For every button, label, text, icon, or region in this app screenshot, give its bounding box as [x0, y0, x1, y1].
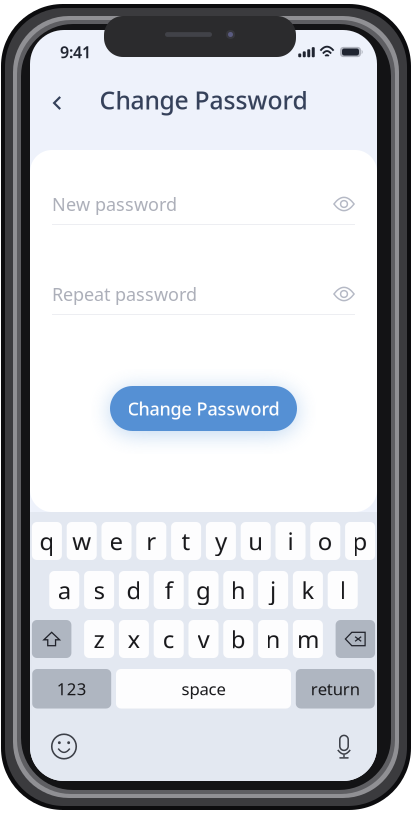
staticText: s: [94, 574, 105, 606]
button[interactable]: e: [101, 522, 131, 560]
button[interactable]: w: [67, 522, 97, 560]
button[interactable]: c: [154, 620, 184, 658]
button[interactable]: q: [32, 522, 62, 560]
staticText: i: [287, 525, 293, 557]
staticText: f: [165, 574, 173, 606]
button[interactable]: return: [296, 669, 375, 708]
button[interactable]: u: [241, 522, 271, 560]
staticText: m: [297, 623, 319, 655]
button[interactable]: v: [188, 620, 218, 658]
staticText: h: [231, 574, 246, 606]
staticText: u: [248, 525, 263, 557]
staticText: y: [215, 525, 227, 557]
button[interactable]: f: [154, 571, 184, 609]
button[interactable]: a: [49, 571, 79, 609]
staticText: b: [231, 623, 246, 655]
button[interactable]: y: [206, 522, 236, 560]
staticText: j: [270, 574, 276, 606]
button[interactable]: h: [223, 571, 253, 609]
button[interactable]: Dictate: [324, 726, 364, 766]
button[interactable]: o: [310, 522, 340, 560]
button[interactable]: g: [188, 571, 218, 609]
button[interactable]: Delete: [336, 620, 375, 658]
button[interactable]: Change Password: [110, 386, 297, 431]
button[interactable]: k: [293, 571, 323, 609]
staticText: Change Password: [127, 396, 279, 421]
staticText: x: [127, 623, 140, 655]
button[interactable]: x: [119, 620, 149, 658]
staticText: l: [340, 574, 346, 606]
button[interactable]: Show repeat password: [333, 286, 355, 302]
staticText: n: [266, 623, 281, 655]
button[interactable]: Show new password: [333, 196, 355, 212]
staticText: g: [196, 574, 211, 606]
staticText: d: [126, 574, 141, 606]
button[interactable]: 123: [32, 669, 111, 708]
staticText: e: [109, 525, 123, 557]
staticText: o: [318, 525, 333, 557]
button[interactable]: l: [328, 571, 358, 609]
staticText: t: [182, 525, 191, 557]
staticText: Repeat password: [52, 282, 197, 306]
button[interactable]: b: [223, 620, 253, 658]
staticText: a: [58, 574, 71, 606]
button[interactable]: p: [345, 522, 375, 560]
staticText: return: [311, 677, 360, 700]
button[interactable]: m: [293, 620, 323, 658]
button[interactable]: Emoji: [44, 726, 84, 766]
button[interactable]: n: [258, 620, 288, 658]
button[interactable]: s: [84, 571, 114, 609]
button[interactable]: t: [171, 522, 201, 560]
staticText: c: [163, 623, 175, 655]
button[interactable]: j: [258, 571, 288, 609]
staticText: w: [72, 525, 91, 557]
staticText: z: [94, 623, 105, 655]
staticText: New password: [52, 192, 177, 216]
staticText: q: [39, 525, 54, 557]
button[interactable]: r: [136, 522, 166, 560]
staticText: 9:41: [60, 41, 91, 63]
staticText: k: [301, 574, 314, 606]
button[interactable]: Shift: [32, 620, 71, 658]
staticText: Change Password: [99, 83, 307, 117]
button[interactable]: Back: [30, 80, 77, 120]
staticText: v: [197, 623, 209, 655]
staticText: p: [353, 525, 368, 557]
button[interactable]: z: [84, 620, 114, 658]
button[interactable]: i: [275, 522, 305, 560]
staticText: 123: [57, 677, 87, 700]
staticText: space: [181, 677, 225, 700]
staticText: r: [146, 525, 156, 557]
button[interactable]: d: [119, 571, 149, 609]
button[interactable]: space: [116, 669, 291, 708]
